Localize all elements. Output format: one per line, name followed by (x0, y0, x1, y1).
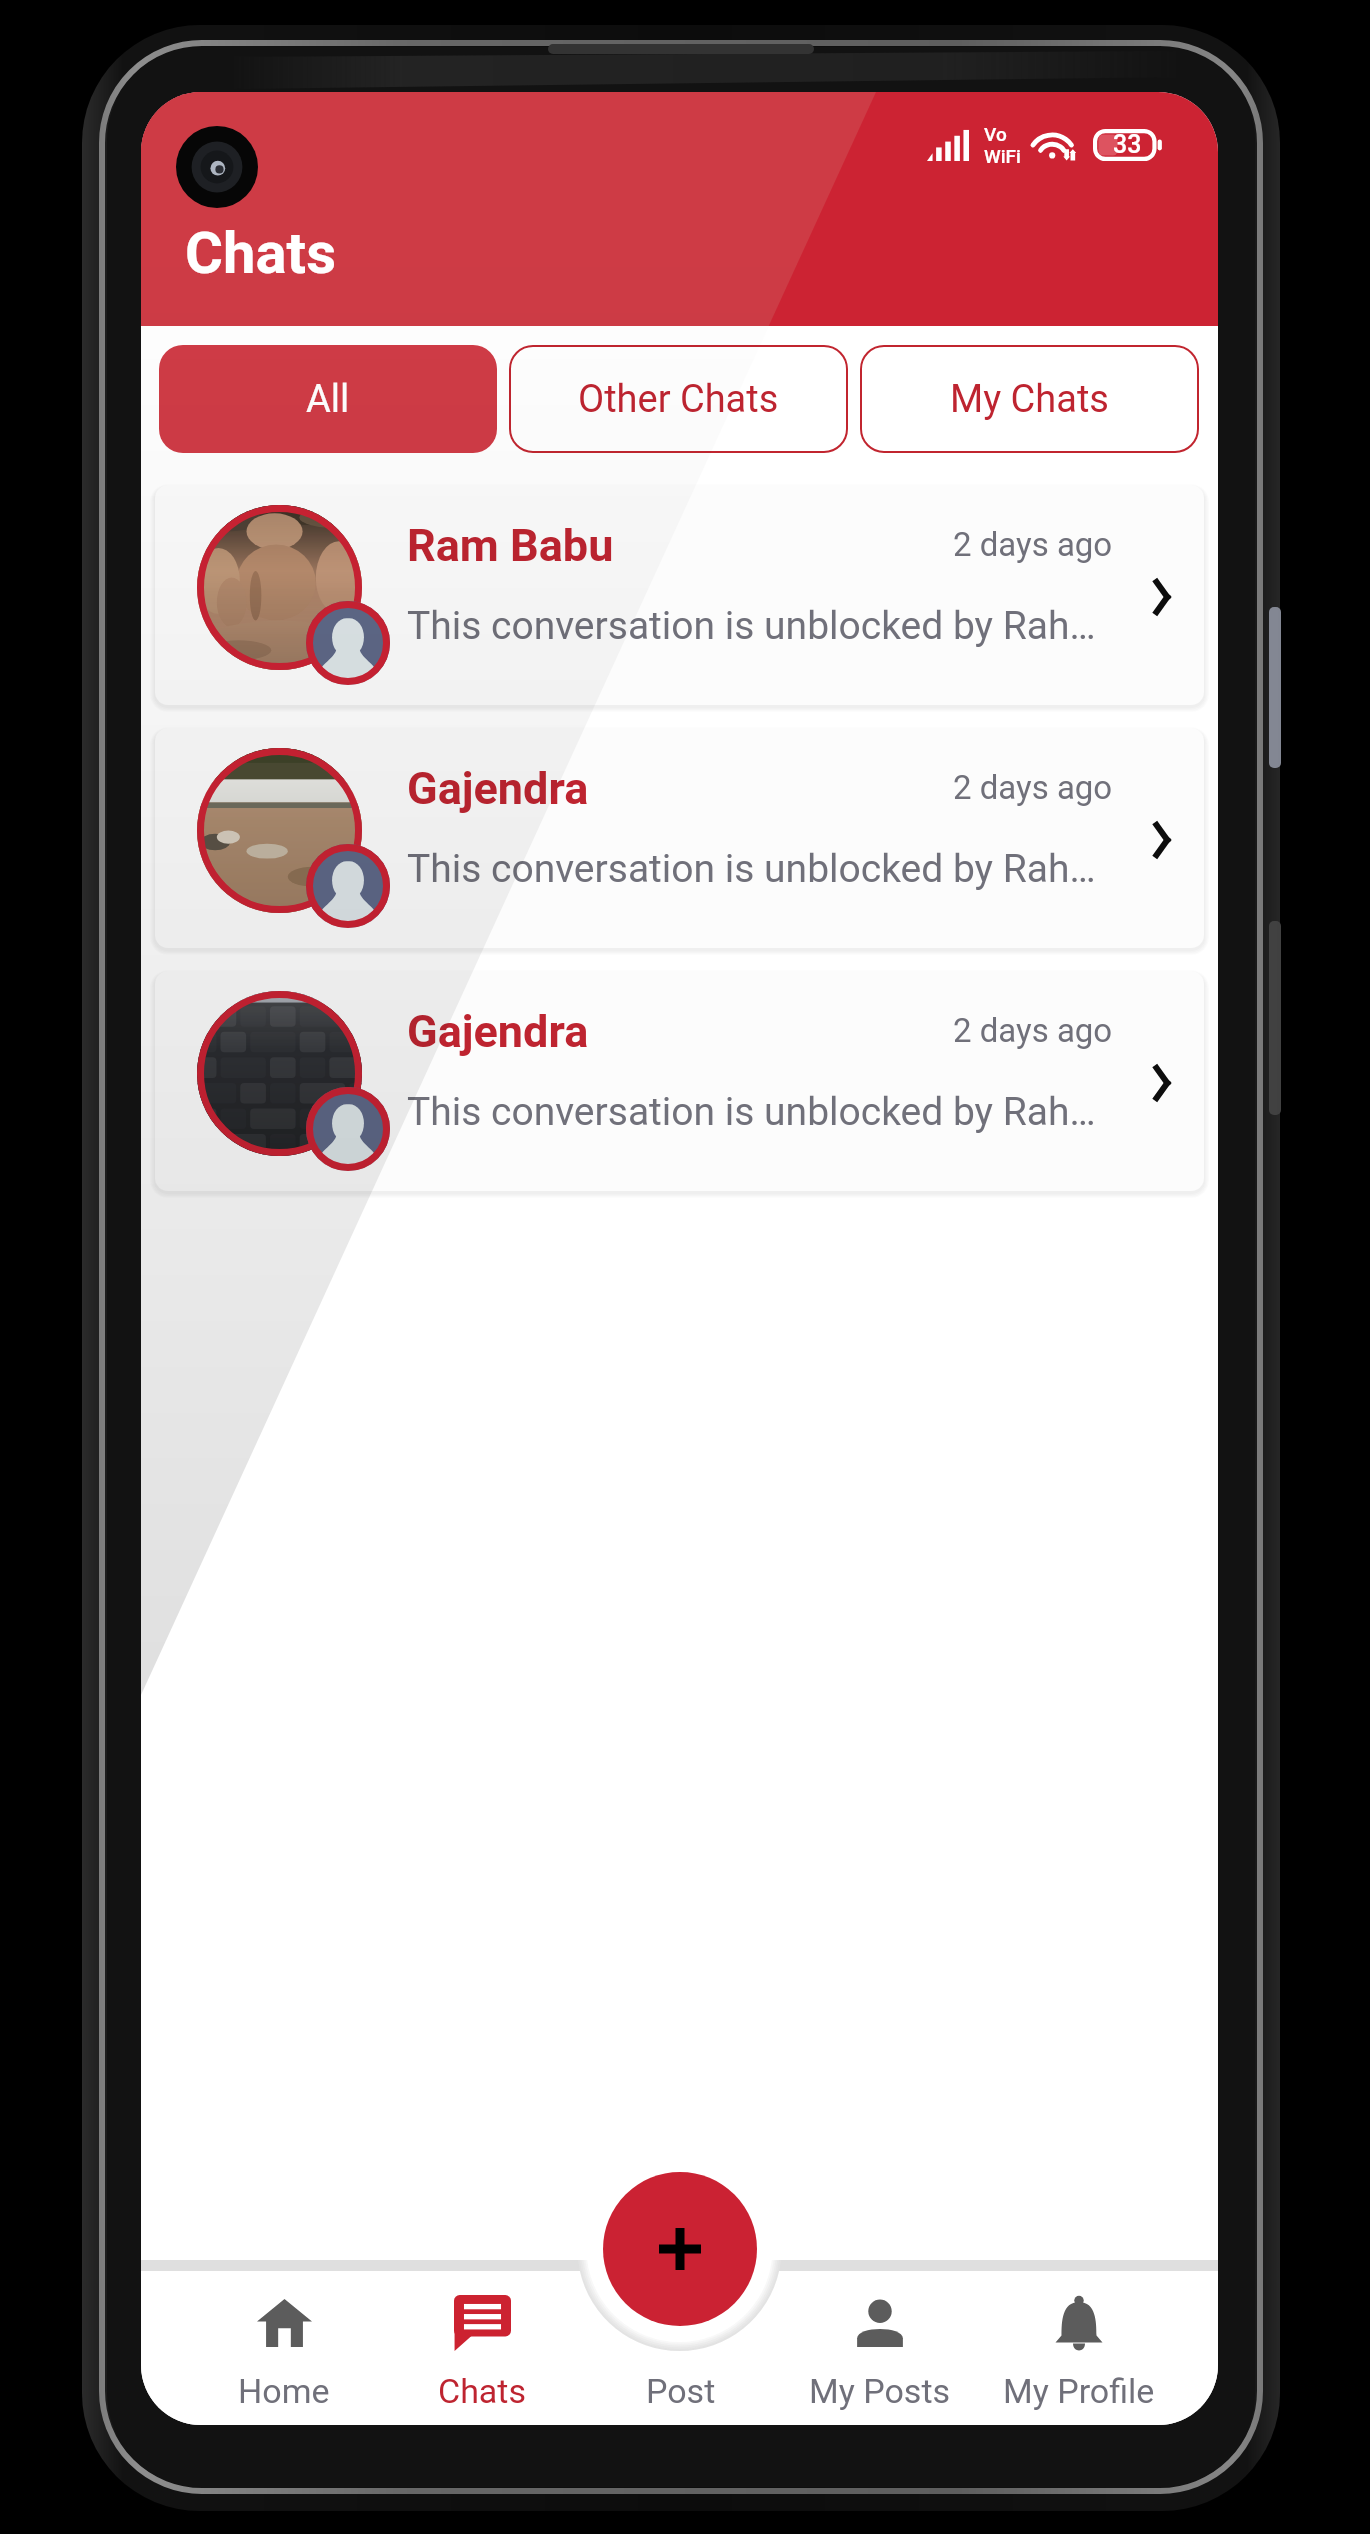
staticText: All (306, 377, 350, 422)
staticText: Chats (185, 219, 337, 287)
staticText: 2 days ago (953, 525, 1113, 564)
button[interactable]: My Profile (979, 2271, 1178, 2425)
staticText: Gajendra (407, 762, 589, 815)
button[interactable]: Post (581, 2271, 780, 2425)
button[interactable]: Home (185, 2271, 383, 2425)
staticText: My Posts (809, 2371, 951, 2411)
staticText: Post (646, 2371, 716, 2411)
staticText: 2 days ago (953, 768, 1113, 807)
staticText: My Profile (1003, 2371, 1155, 2411)
staticText: Home (238, 2371, 330, 2411)
staticText: 33 (1113, 130, 1142, 159)
button[interactable]: Gajendra (155, 728, 1204, 948)
button[interactable]: My Chats (860, 345, 1199, 453)
button[interactable]: Gajendra (155, 971, 1204, 1191)
staticText: 2 days ago (953, 1011, 1113, 1050)
button[interactable]: My Posts (780, 2271, 979, 2425)
staticText: Chats (438, 2371, 527, 2411)
staticText: Other Chats (578, 377, 779, 422)
staticText: WiFi (984, 145, 1021, 167)
staticText: My Chats (950, 377, 1109, 422)
button[interactable]: Other Chats (509, 345, 848, 453)
staticText: Vo (984, 123, 1007, 145)
button[interactable]: All (159, 345, 497, 453)
staticText: This conversation is unblocked by Rah… (407, 1089, 1096, 1135)
button[interactable]: Ram Babu (155, 485, 1204, 705)
staticText: This conversation is unblocked by Rah… (407, 603, 1096, 649)
staticText: This conversation is unblocked by Rah… (407, 846, 1096, 892)
button[interactable]: Chats (383, 2271, 581, 2425)
button[interactable]: Create new post (603, 2172, 757, 2326)
staticText: Ram Babu (407, 519, 614, 572)
staticText: Gajendra (407, 1005, 589, 1058)
